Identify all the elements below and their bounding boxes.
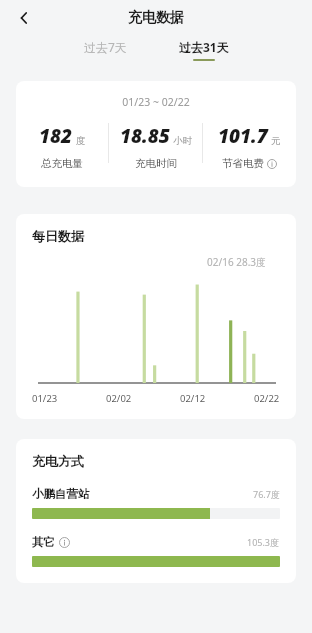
button[interactable]: 过去31天 [175, 36, 233, 64]
staticText: 度 [76, 135, 86, 147]
staticText: 02/16 28.3度 [207, 255, 267, 269]
staticText: 总充电量 [41, 157, 83, 170]
staticText: 充电数据 [128, 9, 184, 27]
staticText: 101.7 [218, 123, 268, 149]
staticText: 节省电费 [222, 157, 264, 170]
staticText: 02/02 [106, 392, 132, 405]
button[interactable]: 18.85 [109, 123, 202, 170]
staticText: 76.7度 [253, 488, 280, 500]
staticText: 02/22 [254, 392, 280, 405]
staticText: 每日数据 [32, 228, 84, 244]
button[interactable]: 182 [16, 123, 108, 170]
staticText: 18.85 [120, 123, 170, 149]
button[interactable]: 小鹏自营站 [32, 487, 280, 519]
button[interactable]: Back [10, 4, 38, 32]
staticText: 小鹏自营站 [32, 487, 90, 501]
staticText: 元 [271, 135, 281, 147]
staticText: 01/23 [32, 392, 58, 405]
staticText: 过去31天 [179, 39, 229, 55]
staticText: 其它 [32, 535, 55, 549]
staticText: 01/23 ~ 02/22 [16, 95, 296, 109]
staticText: 小时 [173, 135, 192, 147]
button[interactable]: 其它 [32, 535, 280, 567]
staticText: 105.3度 [247, 536, 280, 548]
button[interactable]: 101.7 [203, 123, 296, 170]
button[interactable]: 过去7天 [80, 36, 131, 64]
staticText: 充电时间 [135, 157, 177, 170]
staticText: 过去7天 [84, 39, 127, 55]
staticText: 02/12 [180, 392, 206, 405]
staticText: 充电方式 [32, 453, 84, 469]
staticText: 182 [39, 123, 73, 149]
